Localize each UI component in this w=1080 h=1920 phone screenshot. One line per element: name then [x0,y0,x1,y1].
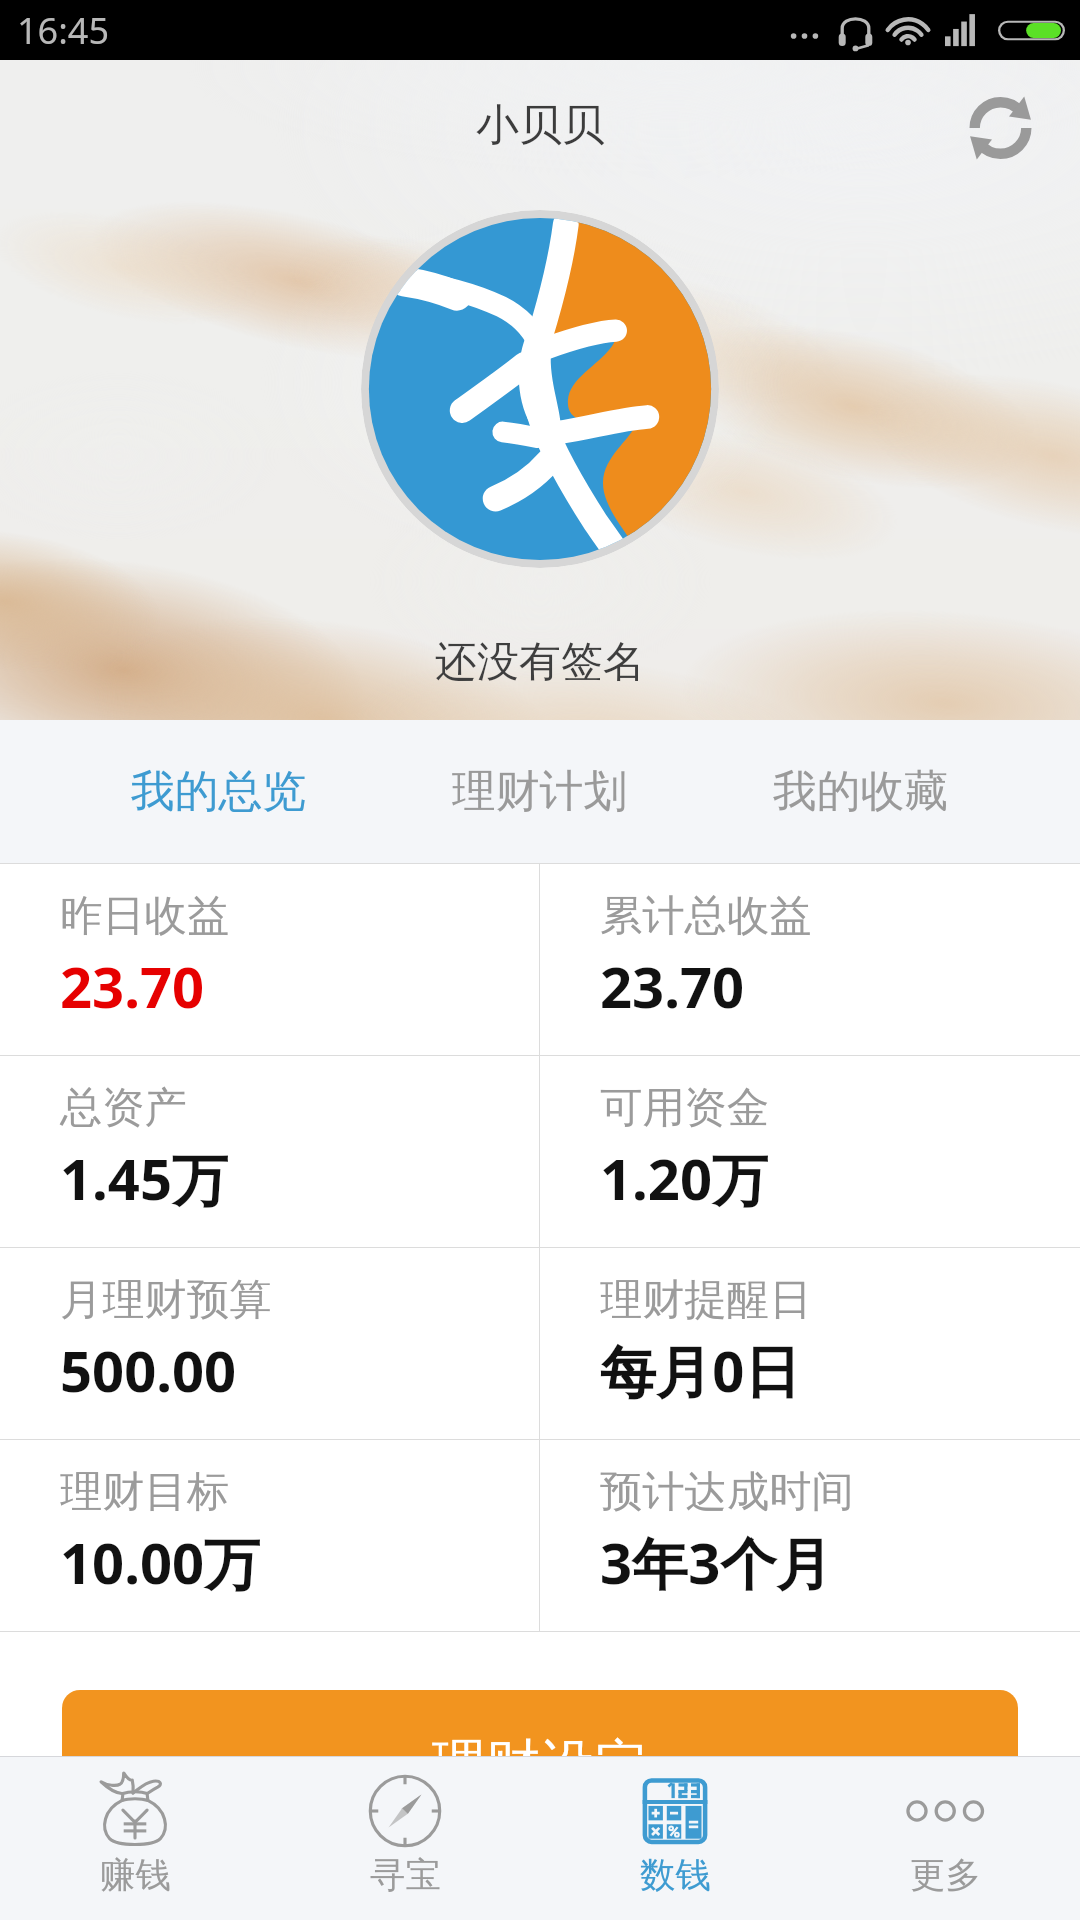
button[interactable]: 理财设定 [62,1690,1018,1840]
button[interactable]: 累计总收益 [540,864,1080,1055]
button[interactable]: 昨日收益 [0,864,539,1055]
button[interactable]: Refresh [967,92,1034,164]
button[interactable]: 可用资金 [540,1056,1080,1247]
button[interactable]: 理财提醒日 [540,1248,1080,1439]
button[interactable]: 月理财预算 [0,1248,539,1439]
staticText: 我的收藏 [773,764,949,819]
staticText: 可用资金 [600,1081,770,1134]
staticText: 寻宝 [370,1853,441,1898]
button[interactable]: 理财目标 [0,1440,539,1631]
staticText: 昨日收益 [60,889,230,942]
staticText: 月理财预算 [60,1273,272,1326]
staticText: 理财提醒日 [600,1273,812,1326]
staticText: 500.00 [60,1332,237,1408]
staticText: 数钱 [640,1853,711,1898]
button[interactable]: Avatar [361,210,719,568]
staticText: 1.45万 [60,1140,229,1217]
staticText: 理财计划 [452,764,628,819]
staticText: 23.70 [60,948,205,1024]
staticText: 小贝贝 [476,98,605,152]
button[interactable]: 理财计划 [379,720,700,863]
staticText: 还没有签名 [435,636,645,689]
staticText: 3年3个月 [600,1524,833,1601]
staticText: 累计总收益 [600,889,812,942]
staticText: 1.20万 [600,1140,769,1217]
staticText: 我的总览 [131,764,307,819]
staticText: 23.70 [600,948,745,1024]
button[interactable]: 我的总览 [59,720,379,863]
button[interactable]: 预计达成时间 [540,1440,1080,1631]
button[interactable]: 总资产 [0,1056,539,1247]
staticText: 更多 [910,1853,981,1898]
button[interactable]: 数钱 [540,1757,810,1920]
staticText: 10.00万 [60,1524,261,1601]
button[interactable]: 更多 [810,1757,1080,1920]
staticText: 每月0日 [600,1332,801,1409]
button[interactable]: 赚钱 [0,1757,270,1920]
staticText: 理财设定 [432,1731,648,1799]
staticText: 总资产 [60,1081,187,1134]
staticText: 预计达成时间 [600,1465,854,1518]
staticText: 16:45 [17,6,110,55]
staticText: 赚钱 [100,1853,171,1898]
button[interactable]: 寻宝 [270,1757,540,1920]
button[interactable]: 我的收藏 [700,720,1021,863]
staticText: 理财目标 [60,1465,230,1518]
